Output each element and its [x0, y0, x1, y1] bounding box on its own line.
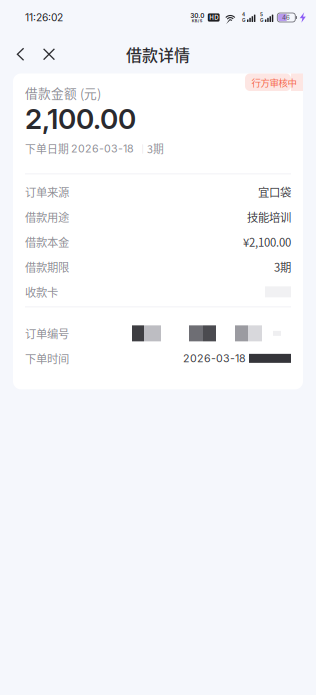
staticText: 30.0: [190, 12, 204, 19]
staticText: 2,100.00: [25, 102, 136, 136]
staticText: ｜: [134, 142, 147, 155]
staticText: 订单编号: [25, 325, 69, 342]
staticText: 借款金额 (元): [25, 83, 101, 102]
staticText: 订单来源: [25, 184, 69, 200]
staticText: 11:26:02: [25, 11, 63, 24]
staticText: 5G: [260, 12, 263, 23]
staticText: 借款本金: [25, 234, 69, 250]
staticText: 46: [282, 14, 290, 21]
staticText: KB/S: [192, 18, 203, 23]
staticText: 宜口袋: [258, 184, 291, 200]
staticText: 3期: [147, 141, 164, 156]
staticText: ¥2,100.00: [243, 234, 291, 250]
button[interactable]: 关闭: [34, 40, 64, 68]
staticText: 3期: [274, 259, 291, 275]
staticText: 借款期限: [25, 259, 69, 275]
staticText: 2026-03-18: [71, 142, 134, 155]
button[interactable]: 返回: [7, 40, 34, 68]
staticText: 2026-03-18: [183, 352, 246, 365]
staticText: 借款详情: [126, 43, 190, 66]
staticText: 4G: [242, 12, 245, 23]
staticText: HD: [209, 14, 218, 21]
staticText: 下单时间: [25, 350, 69, 367]
staticText: 技能培训: [247, 209, 291, 225]
staticText: 下单日期: [25, 141, 71, 156]
staticText: 借款用途: [25, 209, 69, 225]
staticText: 收款卡: [25, 284, 58, 300]
staticText: 行方审核中: [251, 75, 296, 89]
